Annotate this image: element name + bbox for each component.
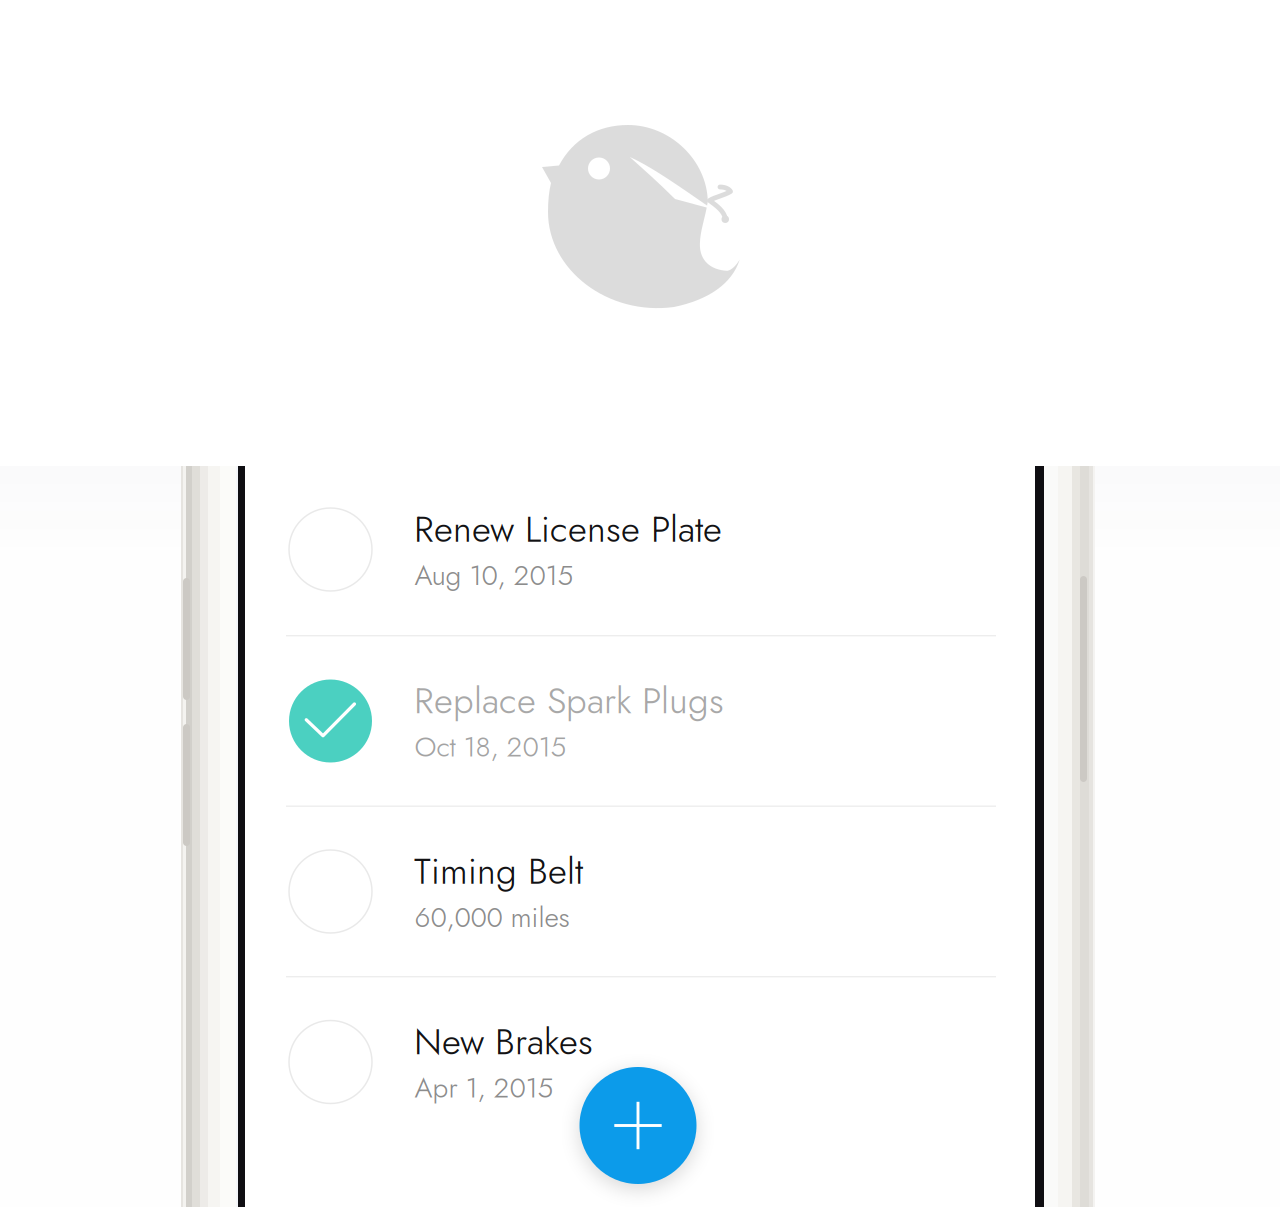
staticText: Apr 1, 2015 [415, 1067, 554, 1108]
button[interactable]: Add task [579, 1067, 696, 1184]
staticText: 60,000 miles [415, 897, 570, 937]
button[interactable]: New Brakes [0, 0, 790, 170]
staticText: New Brakes [414, 1015, 593, 1068]
staticText: Aug 10, 2015 [415, 555, 574, 595]
button[interactable]: Timing Belt [0, 0, 790, 170]
staticText: Replace Spark Plugs [414, 674, 724, 727]
staticText: Timing Belt [414, 844, 583, 897]
button[interactable]: Renew License Plate [0, 0, 790, 170]
staticText: Renew License Plate [414, 502, 722, 555]
staticText: Oct 18, 2015 [415, 726, 567, 767]
button[interactable]: Replace Spark Plugs [0, 0, 790, 170]
